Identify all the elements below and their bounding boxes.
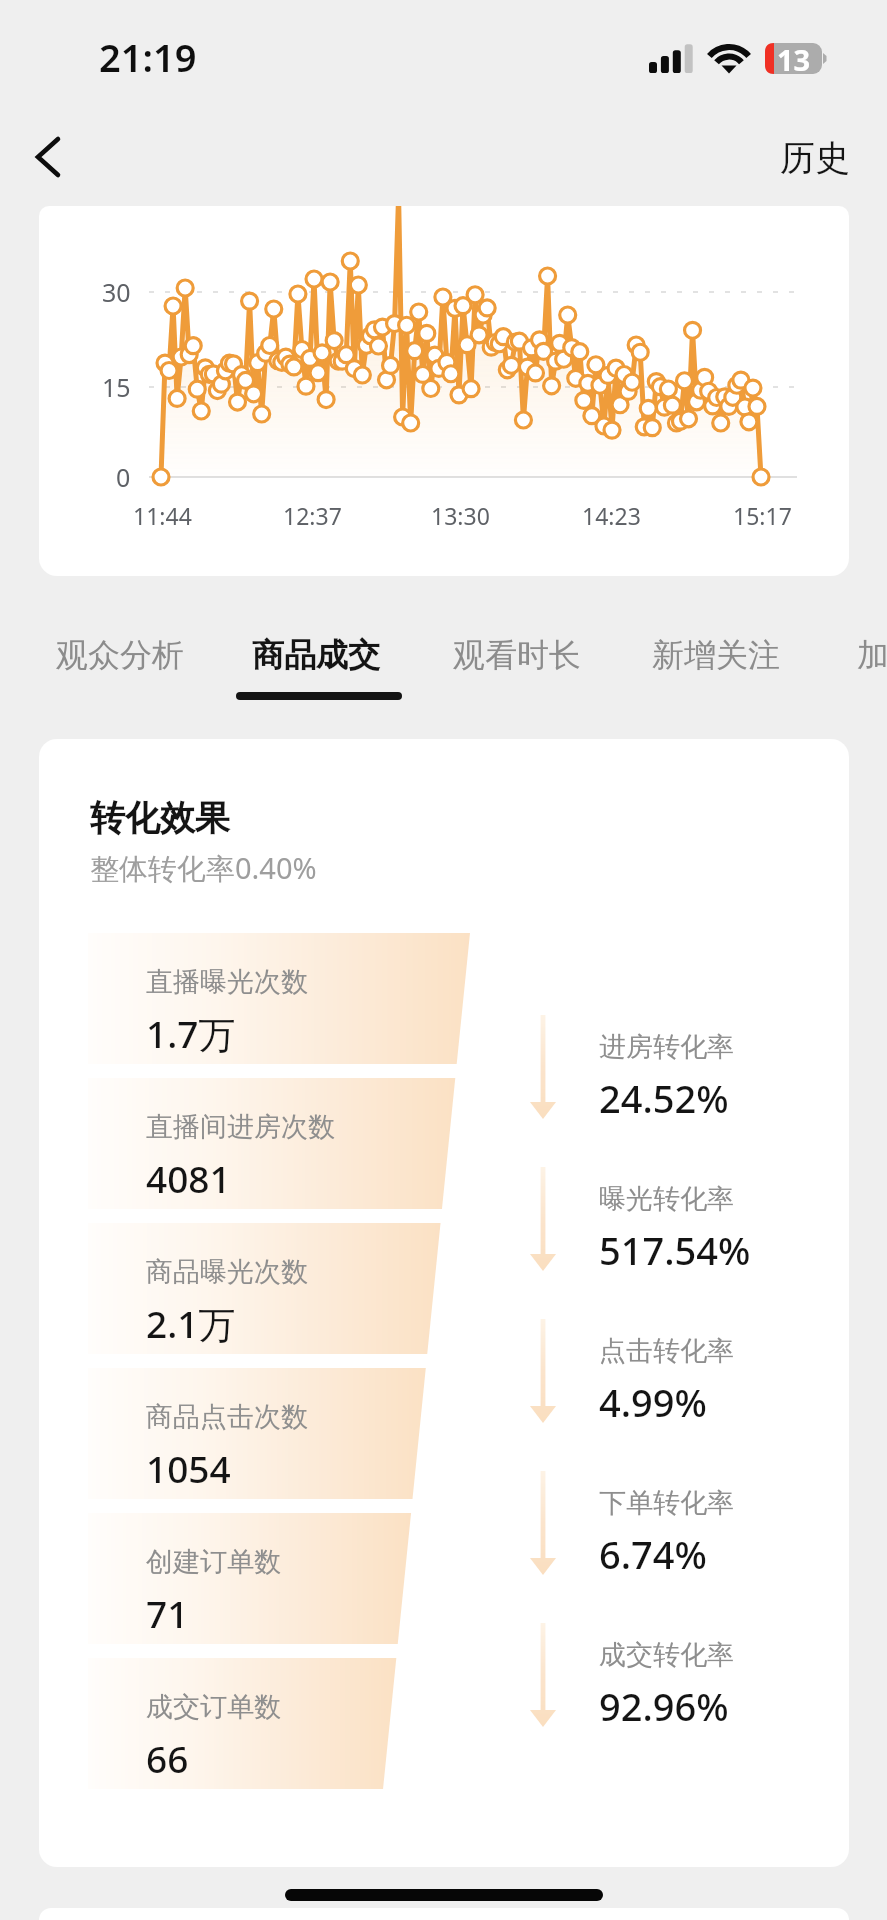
staticText: 92.96% bbox=[599, 1680, 729, 1732]
button[interactable]: 商品成交 bbox=[252, 620, 380, 710]
staticText: 直播间进房次数 bbox=[146, 1110, 335, 1144]
button[interactable]: 商品点击次数 bbox=[88, 1368, 470, 1499]
button[interactable]: 成交转化率 bbox=[599, 1621, 829, 1731]
staticText: 点击转化率 bbox=[599, 1334, 734, 1368]
staticText: 创建订单数 bbox=[146, 1545, 281, 1579]
staticText: 商品点击次数 bbox=[146, 1400, 308, 1434]
button[interactable]: 下单转化率 bbox=[599, 1469, 829, 1579]
staticText: 1054 bbox=[146, 1443, 231, 1493]
staticText: 成交转化率 bbox=[599, 1638, 734, 1672]
staticText: 15:17 bbox=[733, 500, 792, 531]
staticText: 30 bbox=[102, 275, 131, 309]
staticText: 21:19 bbox=[99, 31, 197, 83]
staticText: 66 bbox=[146, 1733, 189, 1783]
button[interactable]: 直播间进房次数 bbox=[88, 1078, 470, 1209]
staticText: 转化效果 bbox=[90, 796, 230, 840]
button[interactable]: 观看时长 bbox=[453, 620, 581, 710]
button[interactable]: 点击转化率 bbox=[599, 1317, 829, 1427]
staticText: 加 bbox=[857, 635, 887, 675]
staticText: 曝光转化率 bbox=[599, 1182, 734, 1216]
staticText: 观看时长 bbox=[453, 635, 581, 675]
staticText: 11:44 bbox=[133, 500, 192, 531]
staticText: 6.74% bbox=[599, 1528, 707, 1580]
staticText: 新增关注 bbox=[652, 635, 780, 675]
staticText: 517.54% bbox=[599, 1224, 751, 1276]
staticText: 商品成交 bbox=[252, 635, 380, 675]
button[interactable]: Back bbox=[16, 126, 82, 192]
button[interactable]: 曝光转化率 bbox=[599, 1165, 829, 1275]
staticText: 24.52% bbox=[599, 1072, 729, 1124]
staticText: 71 bbox=[146, 1588, 189, 1638]
staticText: 14:23 bbox=[582, 500, 641, 531]
staticText: 4081 bbox=[146, 1153, 231, 1203]
staticText: 下单转化率 bbox=[599, 1486, 734, 1520]
staticText: 13 bbox=[777, 40, 811, 71]
staticText: 观众分析 bbox=[56, 635, 184, 675]
staticText: 进房转化率 bbox=[599, 1030, 734, 1064]
staticText: 13:30 bbox=[431, 500, 490, 531]
button[interactable]: 观众分析 bbox=[56, 620, 184, 710]
staticText: 商品曝光次数 bbox=[146, 1255, 308, 1289]
button[interactable]: 创建订单数 bbox=[88, 1513, 470, 1644]
staticText: 2.1万 bbox=[146, 1298, 236, 1349]
button[interactable]: 直播曝光次数 bbox=[88, 933, 470, 1064]
staticText: 历史 bbox=[780, 136, 850, 180]
button[interactable]: 成交订单数 bbox=[88, 1658, 470, 1789]
staticText: 0 bbox=[116, 460, 131, 494]
button[interactable]: 进房转化率 bbox=[599, 1013, 829, 1123]
button[interactable]: 新增关注 bbox=[652, 620, 780, 710]
staticText: 15 bbox=[102, 370, 131, 404]
staticText: 12:37 bbox=[283, 500, 342, 531]
staticText: 整体转化率0.40% bbox=[90, 848, 317, 888]
button[interactable]: 加 bbox=[857, 620, 887, 710]
button[interactable]: 商品曝光次数 bbox=[88, 1223, 470, 1354]
staticText: 直播曝光次数 bbox=[146, 965, 308, 999]
staticText: 成交订单数 bbox=[146, 1690, 281, 1724]
staticText: 1.7万 bbox=[146, 1008, 236, 1059]
staticText: 4.99% bbox=[599, 1376, 707, 1428]
